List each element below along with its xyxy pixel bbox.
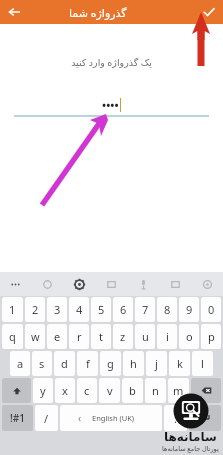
button[interactable]: Theme bbox=[191, 272, 223, 296]
button[interactable]: 3 bbox=[47, 297, 67, 322]
button[interactable]: m bbox=[168, 378, 189, 403]
button[interactable]: k bbox=[169, 351, 190, 376]
staticText: English (UK) bbox=[92, 413, 135, 423]
staticText: w bbox=[31, 329, 40, 344]
button[interactable]: w bbox=[25, 324, 45, 349]
button[interactable]: Backspace bbox=[191, 378, 221, 403]
staticText: 8 bbox=[164, 302, 171, 317]
staticText: h bbox=[130, 356, 137, 371]
staticText: f bbox=[86, 356, 90, 371]
button[interactable]: c bbox=[77, 378, 97, 403]
button[interactable]: 9 bbox=[179, 297, 199, 322]
staticText: !#1 bbox=[10, 411, 25, 425]
staticText: سامانه‌ها bbox=[164, 430, 217, 444]
staticText: 1 bbox=[9, 302, 16, 317]
button[interactable]: y bbox=[33, 378, 53, 403]
staticText: 9 bbox=[186, 302, 193, 317]
button[interactable]: 4 bbox=[69, 297, 89, 322]
staticText: s bbox=[39, 356, 45, 371]
button[interactable]: x bbox=[55, 378, 75, 403]
staticText: b bbox=[129, 383, 136, 398]
staticText: یک گذرواژه وارد کنید bbox=[71, 56, 152, 69]
staticText: e bbox=[54, 329, 61, 344]
staticText: z bbox=[120, 329, 126, 344]
button[interactable]: b bbox=[122, 378, 143, 403]
button[interactable]: p bbox=[201, 324, 221, 349]
staticText: 6 bbox=[120, 302, 127, 317]
staticText: o bbox=[186, 329, 193, 344]
staticText: m bbox=[173, 383, 184, 398]
button[interactable]: z bbox=[113, 324, 133, 349]
button[interactable]: a bbox=[10, 351, 30, 376]
staticText: k bbox=[177, 356, 183, 371]
staticText: •••• bbox=[102, 97, 119, 112]
staticText: گذرواژه شما bbox=[69, 5, 127, 20]
button[interactable]: / bbox=[35, 405, 58, 431]
button[interactable]: 8 bbox=[157, 297, 177, 322]
staticText: پورتال جامع سامانه‌ها bbox=[162, 444, 219, 453]
button[interactable]: . bbox=[164, 405, 187, 431]
staticText: 0 bbox=[208, 302, 215, 317]
button[interactable]: d bbox=[54, 351, 75, 376]
staticText: 2 bbox=[32, 302, 39, 317]
staticText: r bbox=[77, 329, 82, 344]
staticText: i bbox=[166, 329, 169, 344]
staticText: l bbox=[201, 356, 204, 371]
staticText: u bbox=[142, 329, 149, 344]
button[interactable]: Translate bbox=[159, 272, 191, 296]
staticText: n bbox=[152, 383, 159, 398]
staticText: t bbox=[99, 329, 103, 344]
button[interactable]: e bbox=[47, 324, 67, 349]
button[interactable]: t bbox=[91, 324, 111, 349]
staticText: c bbox=[84, 383, 90, 398]
button[interactable]: j bbox=[146, 351, 167, 376]
button[interactable]: Enter bbox=[189, 405, 221, 431]
button[interactable]: Settings bbox=[63, 272, 95, 296]
button[interactable]: u bbox=[135, 324, 155, 349]
staticText: y bbox=[40, 383, 46, 398]
button[interactable]: i bbox=[157, 324, 177, 349]
button[interactable]: n bbox=[145, 378, 166, 403]
button[interactable]: h bbox=[123, 351, 144, 376]
staticText: p bbox=[208, 329, 215, 344]
staticText: x bbox=[62, 383, 68, 398]
button[interactable]: More bbox=[0, 272, 31, 296]
button[interactable]: q bbox=[2, 324, 23, 349]
button[interactable]: Confirm bbox=[199, 2, 219, 22]
staticText: . bbox=[174, 411, 177, 426]
staticText: j bbox=[155, 356, 158, 371]
button[interactable]: !#1 bbox=[2, 405, 33, 431]
staticText: 7 bbox=[142, 302, 149, 317]
button[interactable]: 6 bbox=[113, 297, 133, 322]
button[interactable]: 0 bbox=[201, 297, 221, 322]
button[interactable]: r bbox=[69, 324, 89, 349]
button[interactable]: Shift bbox=[2, 378, 31, 403]
button[interactable]: 1 bbox=[2, 297, 23, 322]
button[interactable]: g bbox=[100, 351, 121, 376]
button[interactable]: v bbox=[99, 378, 120, 403]
staticText: 3 bbox=[54, 302, 61, 317]
staticText: / bbox=[44, 411, 49, 426]
button[interactable]: 7 bbox=[135, 297, 155, 322]
button[interactable]: •••• bbox=[20, 93, 203, 115]
button[interactable]: Sticker bbox=[95, 272, 127, 296]
button[interactable]: Voice bbox=[127, 272, 159, 296]
staticText: v bbox=[107, 383, 113, 398]
staticText: a bbox=[17, 356, 24, 371]
staticText: d bbox=[61, 356, 68, 371]
button[interactable]: ‹ bbox=[60, 405, 162, 431]
button[interactable]: 5 bbox=[91, 297, 111, 322]
staticText: ‹ bbox=[78, 411, 82, 425]
button[interactable]: l bbox=[192, 351, 213, 376]
staticText: 5 bbox=[98, 302, 105, 317]
button[interactable]: f bbox=[77, 351, 98, 376]
button[interactable]: Clipboard bbox=[31, 272, 63, 296]
staticText: 4 bbox=[76, 302, 83, 317]
button[interactable]: 2 bbox=[25, 297, 45, 322]
button[interactable]: Back bbox=[4, 2, 24, 22]
button[interactable]: s bbox=[32, 351, 52, 376]
button[interactable]: o bbox=[179, 324, 199, 349]
staticText: g bbox=[107, 356, 114, 371]
staticText: q bbox=[9, 329, 16, 344]
